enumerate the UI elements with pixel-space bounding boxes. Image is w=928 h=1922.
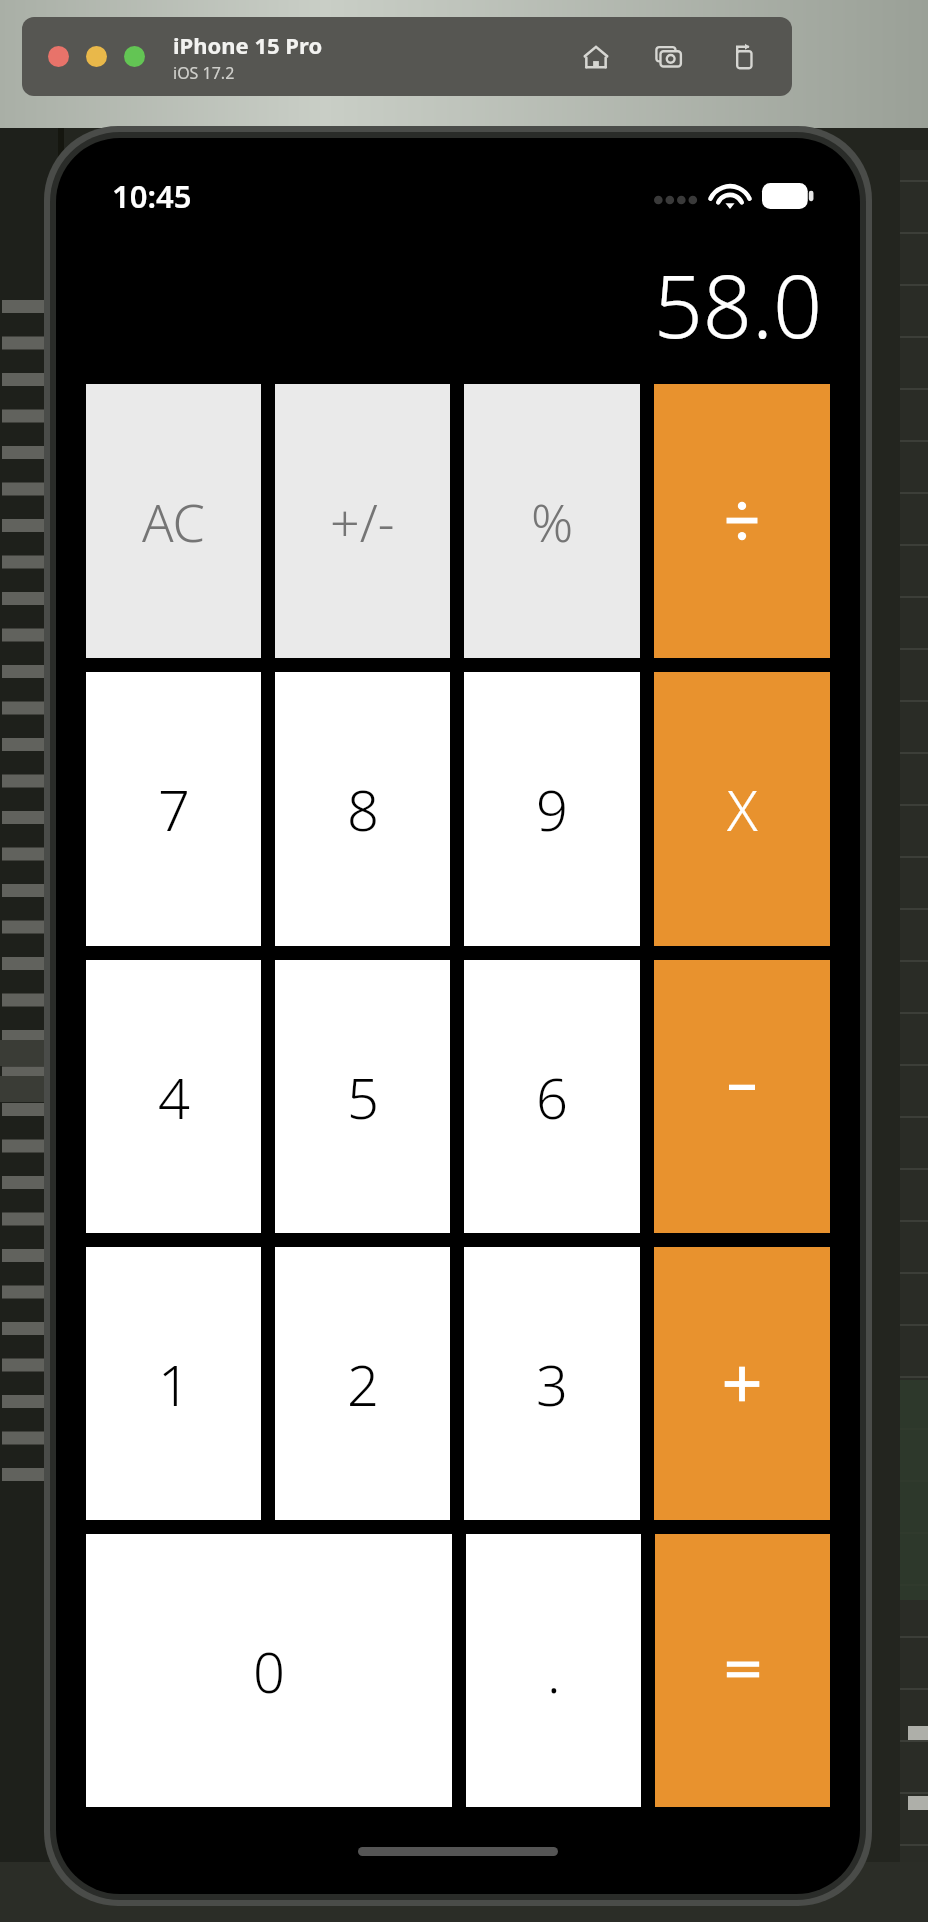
button[interactable]: AC: [86, 384, 261, 658]
staticText: 10:45: [112, 175, 192, 217]
button[interactable]: %: [464, 384, 640, 658]
staticText: 5: [347, 1059, 379, 1135]
button[interactable]: Screenshot: [648, 35, 692, 79]
staticText: 6: [536, 1059, 568, 1135]
button[interactable]: Rotate: [722, 35, 766, 79]
staticText: 8: [347, 771, 379, 847]
button[interactable]: +/-: [275, 384, 450, 658]
button[interactable]: Plus: [654, 1247, 830, 1520]
button[interactable]: 8: [275, 672, 450, 946]
button[interactable]: [124, 46, 145, 67]
button[interactable]: 0: [86, 1534, 452, 1807]
button[interactable]: Equals: [655, 1534, 830, 1807]
button[interactable]: Minus: [654, 960, 830, 1233]
button[interactable]: 4: [86, 960, 261, 1233]
staticText: 9: [536, 771, 568, 847]
staticText: 7: [158, 771, 190, 847]
staticText: 3: [536, 1346, 568, 1422]
staticText: %: [531, 486, 574, 557]
button[interactable]: X: [654, 672, 830, 946]
button[interactable]: 1: [86, 1247, 261, 1520]
staticText: 1: [158, 1346, 190, 1422]
button[interactable]: 6: [464, 960, 640, 1233]
button[interactable]: 5: [275, 960, 450, 1233]
staticText: X: [727, 771, 758, 847]
button[interactable]: 7: [86, 672, 261, 946]
button[interactable]: [86, 46, 107, 67]
button[interactable]: 3: [464, 1247, 640, 1520]
button[interactable]: .: [466, 1534, 641, 1807]
button[interactable]: Divide: [654, 384, 830, 658]
staticText: 0: [253, 1633, 285, 1709]
button[interactable]: [48, 46, 69, 67]
staticText: 58.0: [653, 246, 822, 363]
staticText: iOS 17.2: [173, 62, 235, 84]
button[interactable]: 2: [275, 1247, 450, 1520]
staticText: AC: [142, 486, 205, 557]
staticText: iPhone 15 Pro: [173, 30, 323, 60]
staticText: +/-: [330, 486, 395, 557]
button[interactable]: Home: [574, 35, 618, 79]
staticText: .: [547, 1633, 561, 1709]
button[interactable]: 9: [464, 672, 640, 946]
staticText: 4: [158, 1059, 190, 1135]
staticText: 2: [347, 1346, 379, 1422]
